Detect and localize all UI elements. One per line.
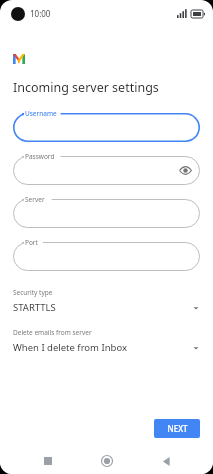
button[interactable]: Show password (178, 163, 193, 178)
staticText: Incoming server settings (13, 79, 159, 96)
button[interactable]: NEXT (154, 419, 200, 438)
staticText: Server (25, 195, 45, 204)
staticText: NEXT (167, 423, 188, 434)
staticText: Username (25, 109, 57, 118)
staticText: Port (25, 238, 38, 247)
button[interactable]: Username (13, 113, 200, 142)
button[interactable]: Recent apps (36, 449, 60, 473)
staticText: 10:00 (30, 8, 51, 19)
button[interactable]: Home (95, 449, 119, 473)
button[interactable]: Port (13, 242, 200, 271)
staticText: Security type (13, 288, 53, 297)
button[interactable]: Server (13, 199, 200, 228)
button[interactable]: Delete emails from server (13, 328, 200, 354)
button[interactable]: Password (13, 156, 200, 185)
staticText: Password (25, 152, 55, 161)
staticText: When I delete from Inbox (13, 341, 127, 354)
staticText: STARTTLS (13, 301, 56, 314)
button[interactable]: Security type (13, 288, 200, 314)
button[interactable]: Back (154, 449, 178, 473)
staticText: Delete emails from server (13, 328, 92, 337)
